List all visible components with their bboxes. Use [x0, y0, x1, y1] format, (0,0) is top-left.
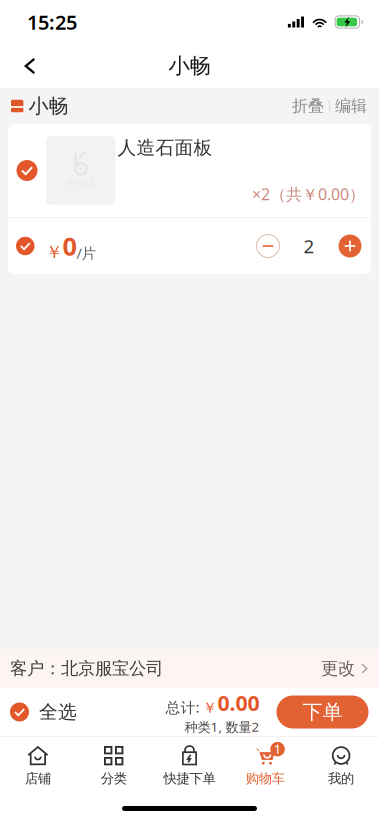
staticText: 总计	[165, 699, 195, 717]
staticText: 1	[274, 741, 281, 757]
staticText: 下单	[302, 700, 342, 724]
staticText: 编辑	[335, 96, 367, 116]
staticText: 15:25	[27, 9, 77, 35]
button[interactable]: Increase quantity	[338, 234, 361, 257]
staticText: 折叠	[292, 96, 324, 116]
button[interactable]: 1	[227, 737, 303, 785]
staticText: 小畅	[168, 53, 210, 79]
staticText: /片	[76, 243, 96, 263]
staticText: :	[195, 697, 199, 717]
button[interactable]: Decrease quantity	[256, 234, 279, 257]
button[interactable]: 我的	[303, 737, 379, 785]
staticText: ￥	[45, 241, 62, 263]
staticText: 更改	[321, 658, 355, 679]
staticText: 我的	[328, 770, 354, 787]
button[interactable]: 分类	[76, 737, 152, 785]
staticText: 购物车	[246, 770, 285, 787]
staticText: 种类1, 数量2	[184, 718, 259, 735]
button[interactable]: 下单	[276, 695, 368, 728]
staticText: 人造石面板	[117, 136, 212, 159]
button[interactable]: Back	[0, 44, 51, 88]
button[interactable]: 店铺	[0, 737, 76, 785]
staticText: 客户：北京服宝公司	[10, 658, 163, 679]
button[interactable]: 客户：北京服宝公司	[0, 649, 379, 688]
button[interactable]: Select item	[16, 154, 37, 186]
button[interactable]: Select price	[16, 229, 34, 263]
staticText: ￥	[202, 699, 217, 717]
staticText: 2	[303, 234, 314, 258]
staticText: ×2（共￥0.00）	[252, 183, 365, 205]
staticText: 店铺	[25, 770, 51, 787]
staticText: 快捷下单	[163, 770, 215, 787]
staticText: 分类	[101, 770, 127, 787]
staticText: 0	[62, 229, 76, 263]
button[interactable]: 编辑	[335, 96, 367, 116]
staticText: 全选	[39, 700, 77, 723]
button[interactable]: 小畅	[11, 94, 68, 118]
button[interactable]: 折叠	[292, 96, 324, 116]
button[interactable]: 快捷下单	[152, 737, 227, 785]
staticText: 小畅	[28, 94, 68, 118]
button[interactable]: 全选	[10, 690, 77, 733]
staticText: 0.00	[217, 688, 259, 717]
